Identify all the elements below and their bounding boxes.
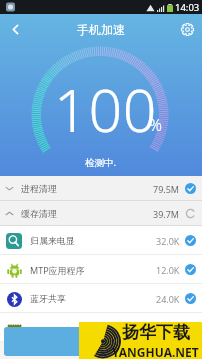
button[interactable]: Settings	[172, 14, 202, 44]
button[interactable]	[0, 313, 202, 342]
staticText: 归属来电显	[30, 235, 75, 246]
button[interactable]	[4, 327, 198, 356]
button[interactable]: 缓存清理	[0, 201, 202, 226]
staticText: 100	[54, 69, 158, 149]
staticText: 扬华下载	[122, 322, 190, 343]
staticText: %	[149, 114, 162, 136]
staticText: YANGHUA.NET	[112, 344, 199, 359]
button[interactable]: MTP应用程序	[0, 255, 202, 284]
button[interactable]: 进程清理	[0, 176, 202, 201]
staticText: 14:03	[175, 1, 200, 14]
button[interactable]: 蓝牙共享	[0, 284, 202, 313]
staticText: 手机加速	[77, 22, 125, 37]
staticText: 79.5M	[153, 183, 180, 195]
staticText: 缓存清理	[21, 208, 57, 219]
staticText: 蓝牙共享	[30, 293, 66, 304]
staticText: 进程清理	[21, 183, 57, 194]
staticText: 12.0K	[156, 264, 180, 276]
staticText: 检测中.	[85, 156, 117, 169]
staticText: 24.0K	[156, 293, 180, 305]
button[interactable]: 归属来电显	[0, 226, 202, 255]
staticText: MTP应用程序	[30, 264, 85, 276]
staticText: 39.7M	[153, 208, 180, 220]
staticText: 32.0K	[156, 235, 180, 247]
button[interactable]: Back	[0, 14, 30, 44]
